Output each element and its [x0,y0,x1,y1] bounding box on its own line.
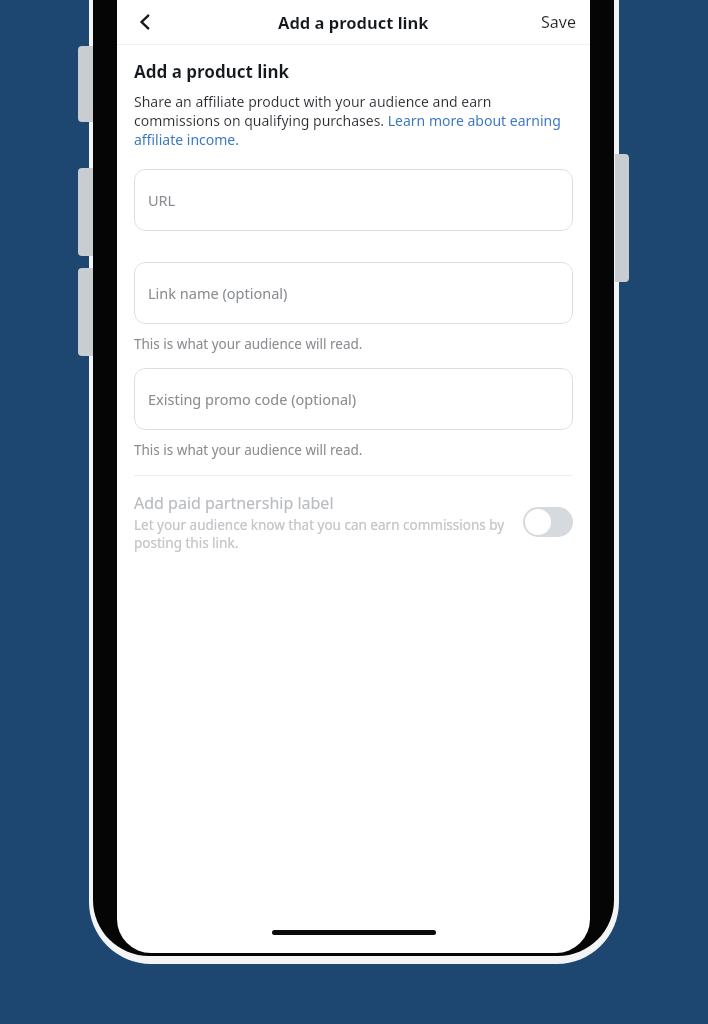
button[interactable]: URL [134,169,573,231]
staticText: Link name (optional) [148,283,288,303]
staticText: Existing promo code (optional) [148,389,357,409]
staticText: Add a product link [278,11,429,33]
staticText: Let your audience know that you can earn… [134,516,509,552]
staticText: Share an affiliate product with your aud… [134,92,573,149]
staticText: URL [148,190,176,210]
button[interactable]: Back [123,0,167,44]
staticText: Save [541,11,576,33]
button[interactable]: Link name (optional) [134,262,573,324]
staticText: Add a product link [134,60,290,83]
button[interactable]: Existing promo code (optional) [134,368,573,430]
staticText: Add paid partnership label [134,492,334,514]
button[interactable]: Add paid partnership label [134,476,573,566]
button[interactable]: Save [527,3,590,41]
staticText: This is what your audience will read. [134,441,363,459]
staticText: This is what your audience will read. [134,335,363,353]
button[interactable]: Add paid partnership label toggle [523,507,573,537]
